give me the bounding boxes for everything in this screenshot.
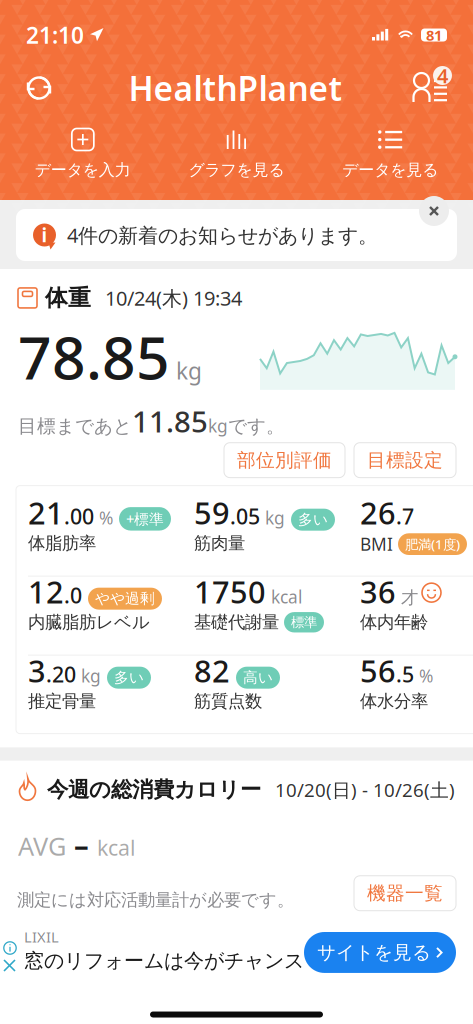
button[interactable]: 部位別評価 xyxy=(224,443,345,478)
button[interactable]: Dismiss notice xyxy=(419,196,449,226)
staticText: BMI xyxy=(360,533,393,556)
staticText: 目標まであと xyxy=(18,415,132,438)
staticText: 標準 xyxy=(291,614,317,630)
staticText: % xyxy=(414,664,433,687)
staticText: .7 xyxy=(396,502,414,530)
staticText: 81 xyxy=(426,25,442,45)
staticText: 内臓脂肪レベル xyxy=(28,612,150,633)
staticText: 78.85 xyxy=(18,318,170,396)
staticText: .00 xyxy=(64,502,94,530)
button[interactable]: Close ad xyxy=(3,959,16,972)
staticText: 部位別評価 xyxy=(237,449,332,472)
staticText: 機器一覧 xyxy=(367,882,443,905)
staticText: HealthPlanet xyxy=(128,66,342,110)
staticText: やや過剰 xyxy=(95,590,155,608)
staticText: です。 xyxy=(228,415,285,438)
staticText: 体内年齢 xyxy=(360,612,428,633)
button[interactable]: Members xyxy=(413,69,453,107)
staticText: 肥満(1度) xyxy=(405,535,460,553)
staticText: – xyxy=(74,825,89,864)
staticText: グラフを見る xyxy=(188,160,284,180)
staticText: kg xyxy=(76,664,101,687)
staticText: 筋質点数 xyxy=(194,691,262,712)
staticText: 56 xyxy=(360,650,396,691)
staticText: 10/24(木) 19:34 xyxy=(105,285,242,311)
staticText: 推定骨量 xyxy=(28,691,96,712)
button[interactable]: Ad info xyxy=(3,941,17,955)
button[interactable]: データを見る xyxy=(313,120,467,190)
staticText: kcal xyxy=(266,585,302,608)
staticText: kg xyxy=(260,506,285,529)
staticText: .0 xyxy=(64,581,82,609)
staticText: 目標設定 xyxy=(367,449,443,472)
staticText: 4件の新着のお知らせがあります。 xyxy=(67,222,378,248)
staticText: 多い xyxy=(298,511,328,529)
staticText: 基礎代謝量 xyxy=(194,612,279,633)
staticText: データを入力 xyxy=(35,160,131,180)
staticText: 4 xyxy=(437,62,448,89)
staticText: kg xyxy=(176,356,202,386)
staticText: 体重 xyxy=(45,284,91,312)
staticText: kcal xyxy=(97,833,136,862)
staticText: +標準 xyxy=(126,509,164,529)
staticText: i xyxy=(41,223,47,247)
staticText: LIXIL xyxy=(24,927,59,946)
staticText: サイトを見る xyxy=(317,941,431,964)
button[interactable]: サイトを見る xyxy=(304,932,456,973)
staticText: 26 xyxy=(360,492,396,533)
staticText: 21 xyxy=(28,492,64,533)
staticText: 11.85 xyxy=(132,402,208,441)
staticText: 窓のリフォームは今がチャンス xyxy=(24,948,304,973)
staticText: 36 xyxy=(360,571,396,612)
staticText: 体水分率 xyxy=(360,691,428,712)
staticText: .20 xyxy=(46,660,76,688)
staticText: 高い xyxy=(243,669,273,687)
staticText: 多い xyxy=(114,669,144,687)
staticText: 82 xyxy=(194,650,230,691)
staticText: 21:10 xyxy=(26,20,84,50)
staticText: データを見る xyxy=(342,160,438,180)
button[interactable]: 目標設定 xyxy=(354,443,456,478)
button[interactable]: グラフを見る xyxy=(160,120,313,190)
staticText: 12 xyxy=(28,571,64,612)
button[interactable]: データを入力 xyxy=(6,120,160,190)
button[interactable]: i xyxy=(16,209,457,261)
staticText: 今週の総消費カロリー xyxy=(47,777,261,803)
staticText: 3 xyxy=(28,650,46,691)
staticText: 10/20(日) - 10/26(土) xyxy=(275,777,455,802)
staticText: 才 xyxy=(396,587,418,608)
staticText: .05 xyxy=(230,502,260,530)
staticText: 1750 xyxy=(194,571,266,612)
staticText: 測定には対応活動量計が必要です。 xyxy=(17,889,294,911)
staticText: .5 xyxy=(396,660,414,688)
button[interactable]: Sync data xyxy=(20,69,58,107)
staticText: 59 xyxy=(194,492,230,533)
staticText: % xyxy=(94,506,113,529)
staticText: 体脂肪率 xyxy=(28,533,96,554)
staticText: kg xyxy=(208,414,228,437)
button[interactable]: 機器一覧 xyxy=(354,876,456,911)
staticText: 筋肉量 xyxy=(194,533,245,554)
staticText: AVG xyxy=(18,829,66,863)
